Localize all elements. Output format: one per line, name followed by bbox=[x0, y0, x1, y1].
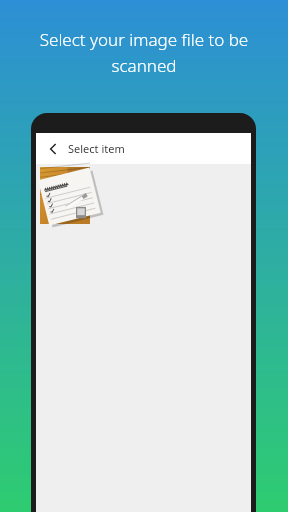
button[interactable]: Back bbox=[42, 138, 64, 160]
staticText: Select your image file to be scanned bbox=[12, 28, 276, 77]
staticText: Select item bbox=[68, 141, 125, 156]
button[interactable]: Checklist image bbox=[40, 167, 90, 224]
